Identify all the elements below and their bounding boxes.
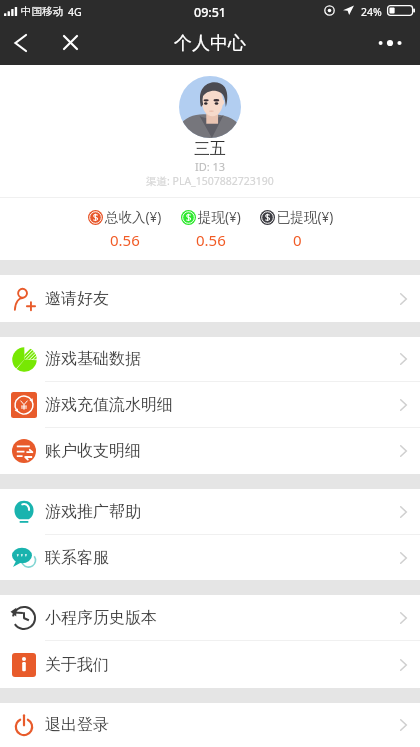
staticText: ID: 13	[195, 159, 226, 174]
staticText: 0	[293, 230, 302, 250]
button[interactable]: 退出登录	[0, 703, 420, 747]
button[interactable]: 联系客服	[0, 535, 420, 580]
staticText: 三五	[194, 139, 226, 159]
staticText: 4G	[68, 5, 82, 19]
staticText: 账户收支明细	[45, 441, 141, 461]
staticText: 0.56	[196, 230, 226, 250]
staticText: 渠道: PLA_1507882723190	[146, 174, 274, 188]
staticText: 09:51	[194, 4, 227, 21]
button[interactable]: Back	[0, 22, 41, 63]
button[interactable]: 游戏推广帮助	[0, 489, 420, 534]
staticText: 个人中心	[174, 32, 246, 55]
button[interactable]: 小程序历史版本	[0, 595, 420, 640]
staticText: 提现(¥)	[198, 208, 241, 226]
staticText: 游戏基础数据	[45, 349, 141, 369]
button[interactable]: 游戏充值流水明细	[0, 382, 420, 427]
staticText: 24%	[361, 5, 382, 19]
staticText: 小程序历史版本	[45, 608, 157, 628]
staticText: 中国移动	[21, 5, 63, 18]
staticText: 关于我们	[45, 655, 109, 675]
staticText: 联系客服	[45, 548, 109, 568]
staticText: 邀请好友	[45, 289, 109, 309]
button[interactable]: 游戏基础数据	[0, 337, 420, 381]
button[interactable]: 账户收支明细	[0, 428, 420, 474]
staticText: 游戏推广帮助	[45, 502, 141, 522]
staticText: 总收入(¥)	[105, 208, 162, 226]
button[interactable]: 邀请好友	[0, 275, 420, 322]
staticText: 0.56	[110, 230, 140, 250]
button[interactable]: 关于我们	[0, 641, 420, 688]
button[interactable]: Close	[50, 22, 91, 63]
button[interactable]: More options	[369, 22, 411, 64]
staticText: 游戏充值流水明细	[45, 395, 173, 415]
staticText: 已提现(¥)	[277, 208, 334, 226]
staticText: 退出登录	[45, 715, 109, 735]
